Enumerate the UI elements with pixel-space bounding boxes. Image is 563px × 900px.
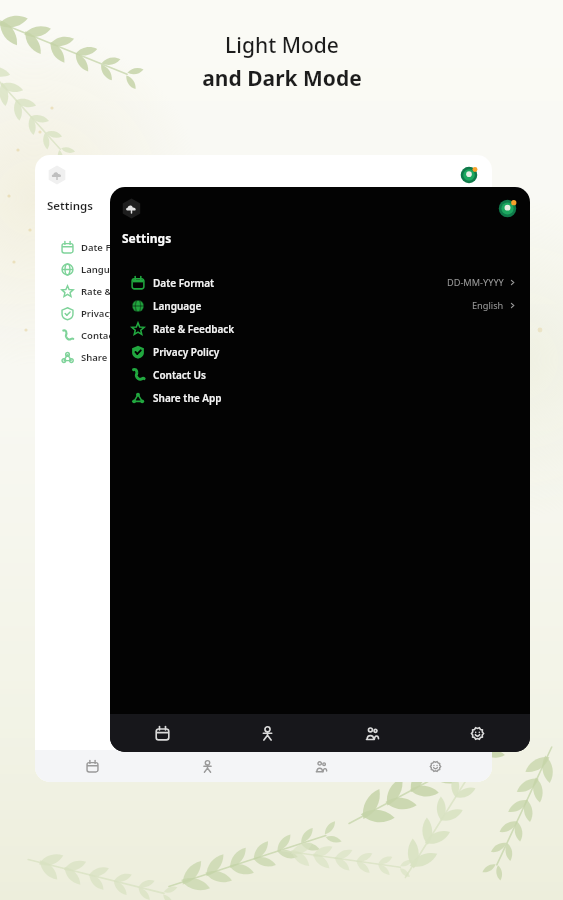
button[interactable]: Privacy Policy (110, 340, 530, 363)
button[interactable]: Profile (215, 714, 320, 752)
button[interactable]: Contact Us (35, 324, 492, 346)
button[interactable]: Language (35, 258, 492, 280)
button[interactable]: Profile (460, 166, 478, 184)
button[interactable]: Settings (378, 750, 492, 782)
staticText: Contact Us (153, 368, 206, 382)
button[interactable]: Language (110, 294, 530, 317)
button[interactable]: Contact Us (110, 363, 530, 386)
button[interactable]: Profile (498, 199, 517, 218)
button[interactable]: Groups (320, 714, 425, 752)
staticText: Contact Us (81, 329, 132, 342)
button[interactable]: Groups (264, 750, 378, 782)
staticText: Settings (122, 230, 172, 246)
button[interactable]: Profile (150, 750, 264, 782)
staticText: Rate & Feedback (153, 322, 235, 336)
button[interactable]: Rate & Feedback (110, 317, 530, 340)
staticText: Settings (47, 198, 93, 214)
staticText: Light Mode (225, 31, 339, 60)
staticText: Language (153, 299, 202, 313)
button[interactable]: Backup (121, 198, 142, 219)
staticText: Date Format (81, 241, 140, 254)
staticText: and Dark Mode (202, 64, 362, 93)
button[interactable]: Date Format (110, 271, 530, 294)
staticText: English (472, 299, 504, 312)
staticText: Share the App (81, 351, 147, 364)
staticText: Privacy Policy (153, 345, 220, 359)
button[interactable]: Backup (47, 165, 67, 185)
button[interactable]: Share the App (35, 346, 492, 368)
button[interactable]: Settings (425, 714, 530, 752)
staticText: DD-MM-YYYY (447, 276, 504, 289)
button[interactable]: Calendar (110, 714, 215, 752)
staticText: Language (81, 263, 127, 276)
button[interactable]: Share the App (110, 386, 530, 409)
staticText: Share the App (153, 391, 222, 405)
button[interactable]: Rate & Feedback (35, 280, 492, 302)
button[interactable]: Date Format (35, 236, 492, 258)
button[interactable]: Calendar (35, 750, 150, 782)
staticText: Date Format (153, 276, 215, 290)
button[interactable]: Privacy Policy (35, 302, 492, 324)
staticText: Privacy Policy (81, 307, 144, 320)
staticText: Rate & Feedback (81, 285, 159, 298)
